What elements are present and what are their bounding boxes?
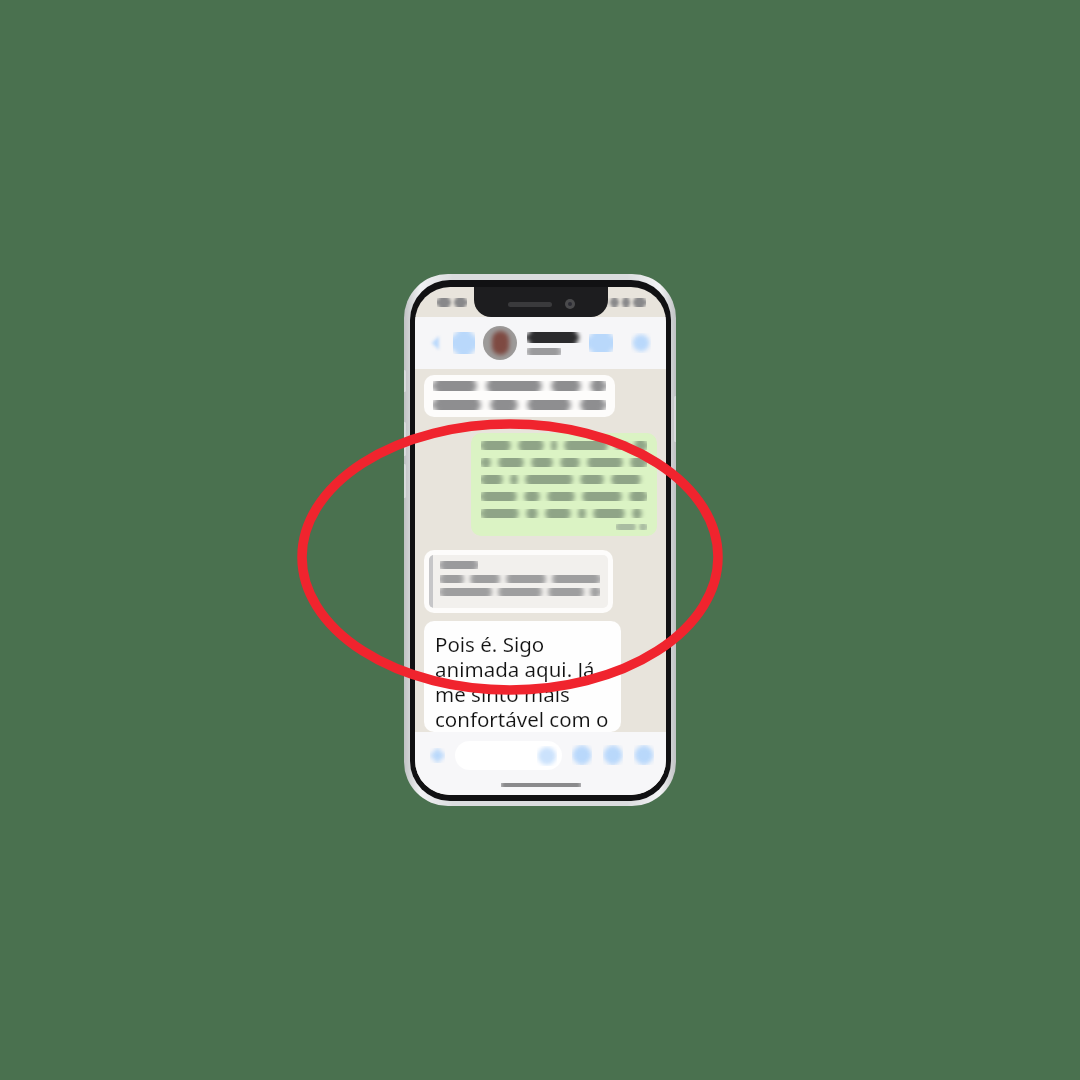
button[interactable]: Voice message xyxy=(631,742,657,768)
button[interactable]: Sticker xyxy=(424,742,450,768)
button[interactable]: Voice call xyxy=(626,328,656,358)
button[interactable]: Profile photo xyxy=(483,326,517,360)
button[interactable]: Pois é. Sigo animada aqui. Já me sinto m… xyxy=(424,621,621,732)
button[interactable] xyxy=(527,332,586,355)
button[interactable]: Camera xyxy=(600,742,626,768)
staticText: Pois é. Sigo animada aqui. Já me sinto m… xyxy=(435,630,611,728)
button[interactable] xyxy=(424,375,615,417)
button[interactable] xyxy=(471,433,657,536)
button[interactable] xyxy=(424,550,613,613)
button[interactable]: Attach xyxy=(569,742,595,768)
button[interactable]: Back xyxy=(423,330,449,356)
button[interactable] xyxy=(455,741,562,770)
button[interactable]: Video call xyxy=(586,328,616,358)
